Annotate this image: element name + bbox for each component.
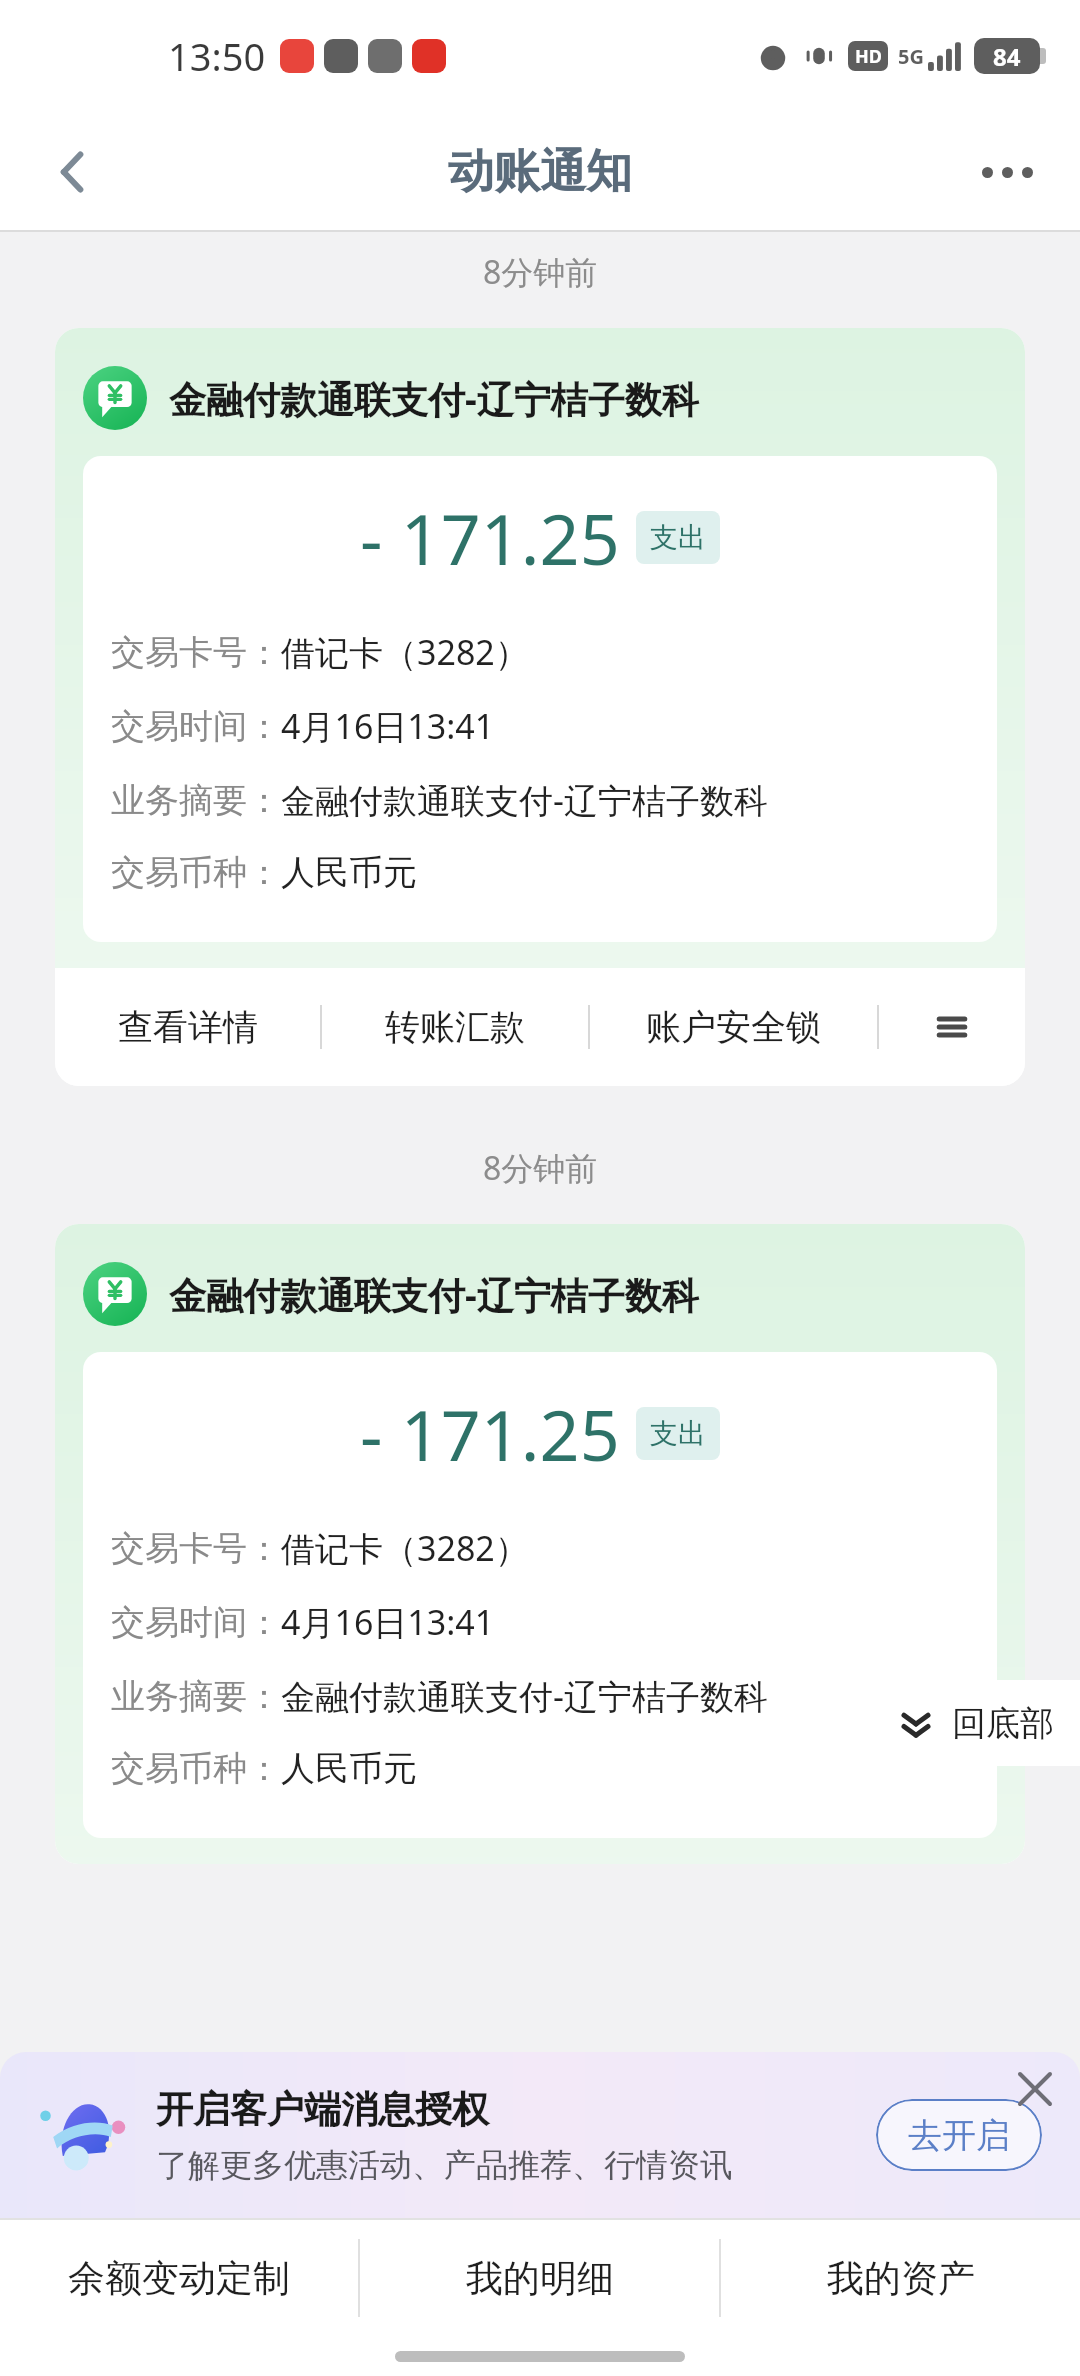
staticText: 4月16日13:41 [281,1599,495,1645]
button[interactable]: 返回 [30,129,116,215]
staticText: 查看详情 [118,1005,258,1049]
staticText: 8分钟前 [483,1146,598,1190]
staticText: 开启客户端消息授权 [156,2086,489,2133]
staticText: 金融付款通联支付-辽宁桔子数科 [169,1269,699,1320]
staticText: 余额变动定制 [68,2255,290,2302]
staticText: HD [855,44,882,69]
button[interactable]: 我的明细 [360,2220,719,2336]
staticText: 8分钟前 [483,250,598,294]
staticText: 去开启 [908,2114,1010,2157]
staticText: 84 [993,40,1021,73]
staticText: 交易卡号： [111,631,281,674]
button[interactable]: 查看详情 [55,968,320,1086]
button[interactable]: 关闭 [1008,2062,1062,2116]
staticText: 13:50 [168,30,266,82]
staticText: 转账汇款 [385,1005,525,1049]
button[interactable]: 余额变动定制 [0,2220,358,2336]
button[interactable]: 金融付款通联支付-辽宁桔子数科 [55,328,1025,1086]
staticText: 业务摘要： [111,779,281,822]
staticText: - 171.25 [360,490,620,585]
staticText: 借记卡（3282） [281,1525,529,1571]
staticText: 支出 [650,1416,706,1451]
staticText: 交易币种： [111,851,281,894]
staticText: 借记卡（3282） [281,629,529,675]
staticText: 4月16日13:41 [281,703,495,749]
staticText: 5G [898,43,924,70]
staticText: 人民币元 [281,851,417,894]
staticText: 我的明细 [466,2255,614,2302]
staticText: 动账通知 [448,143,632,201]
staticText: 我的资产 [827,2255,975,2302]
staticText: 回底部 [952,1702,1054,1745]
staticText: - 171.25 [360,1386,620,1481]
staticText: 人民币元 [281,1747,417,1790]
button[interactable]: 去开启 [876,2099,1042,2171]
staticText: 支出 [650,520,706,555]
staticText: 交易时间： [111,1601,281,1644]
button[interactable]: 金融付款通联支付-辽宁桔子数科 [55,1224,1025,1864]
staticText: 了解更多优惠活动、产品推荐、行情资讯 [156,2145,732,2185]
button[interactable]: 我的资产 [721,2220,1080,2336]
staticText: 交易币种： [111,1747,281,1790]
staticText: 业务摘要： [111,1675,281,1718]
staticText: 金融付款通联支付-辽宁桔子数科 [281,1673,768,1719]
button[interactable]: 开启客户端消息授权 [0,2052,1080,2218]
button[interactable]: 更多操作 [879,968,1025,1086]
button[interactable]: 更多 [964,129,1050,215]
staticText: 交易卡号： [111,1527,281,1570]
staticText: 金融付款通联支付-辽宁桔子数科 [169,373,699,424]
button[interactable]: 回底部 [866,1680,1080,1766]
staticText: 账户安全锁 [646,1005,821,1049]
staticText: 交易时间： [111,705,281,748]
staticText: 金融付款通联支付-辽宁桔子数科 [281,777,768,823]
button[interactable]: 账户安全锁 [590,968,877,1086]
button[interactable]: 转账汇款 [322,968,588,1086]
